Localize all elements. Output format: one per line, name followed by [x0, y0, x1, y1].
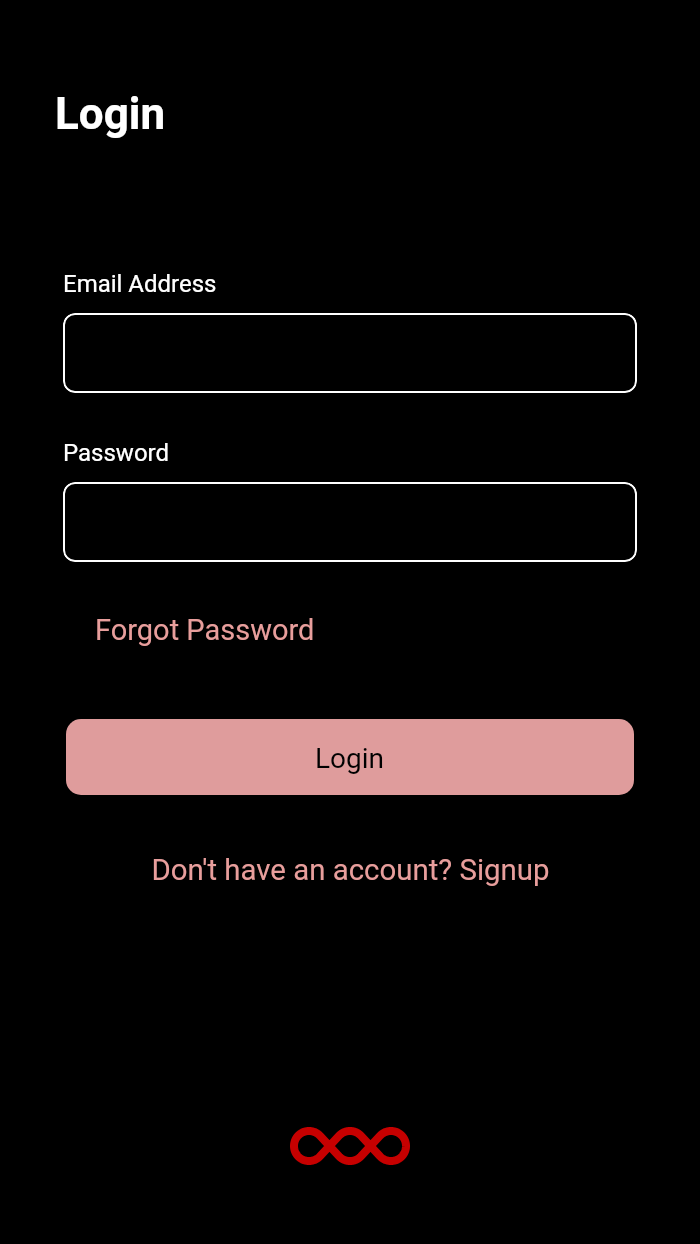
button[interactable]: Login [66, 719, 634, 795]
button[interactable]: Forgot Password [95, 613, 315, 647]
button[interactable] [63, 482, 637, 562]
staticText: Password [63, 439, 170, 467]
button[interactable] [63, 313, 637, 393]
staticText: Login [55, 88, 166, 140]
staticText: Login [315, 742, 385, 775]
button[interactable]: Don't have an account? Signup [0, 853, 700, 887]
staticText: Don't have an account? Signup [151, 853, 550, 887]
staticText: Email Address [63, 270, 217, 298]
staticText: Forgot Password [95, 613, 315, 647]
